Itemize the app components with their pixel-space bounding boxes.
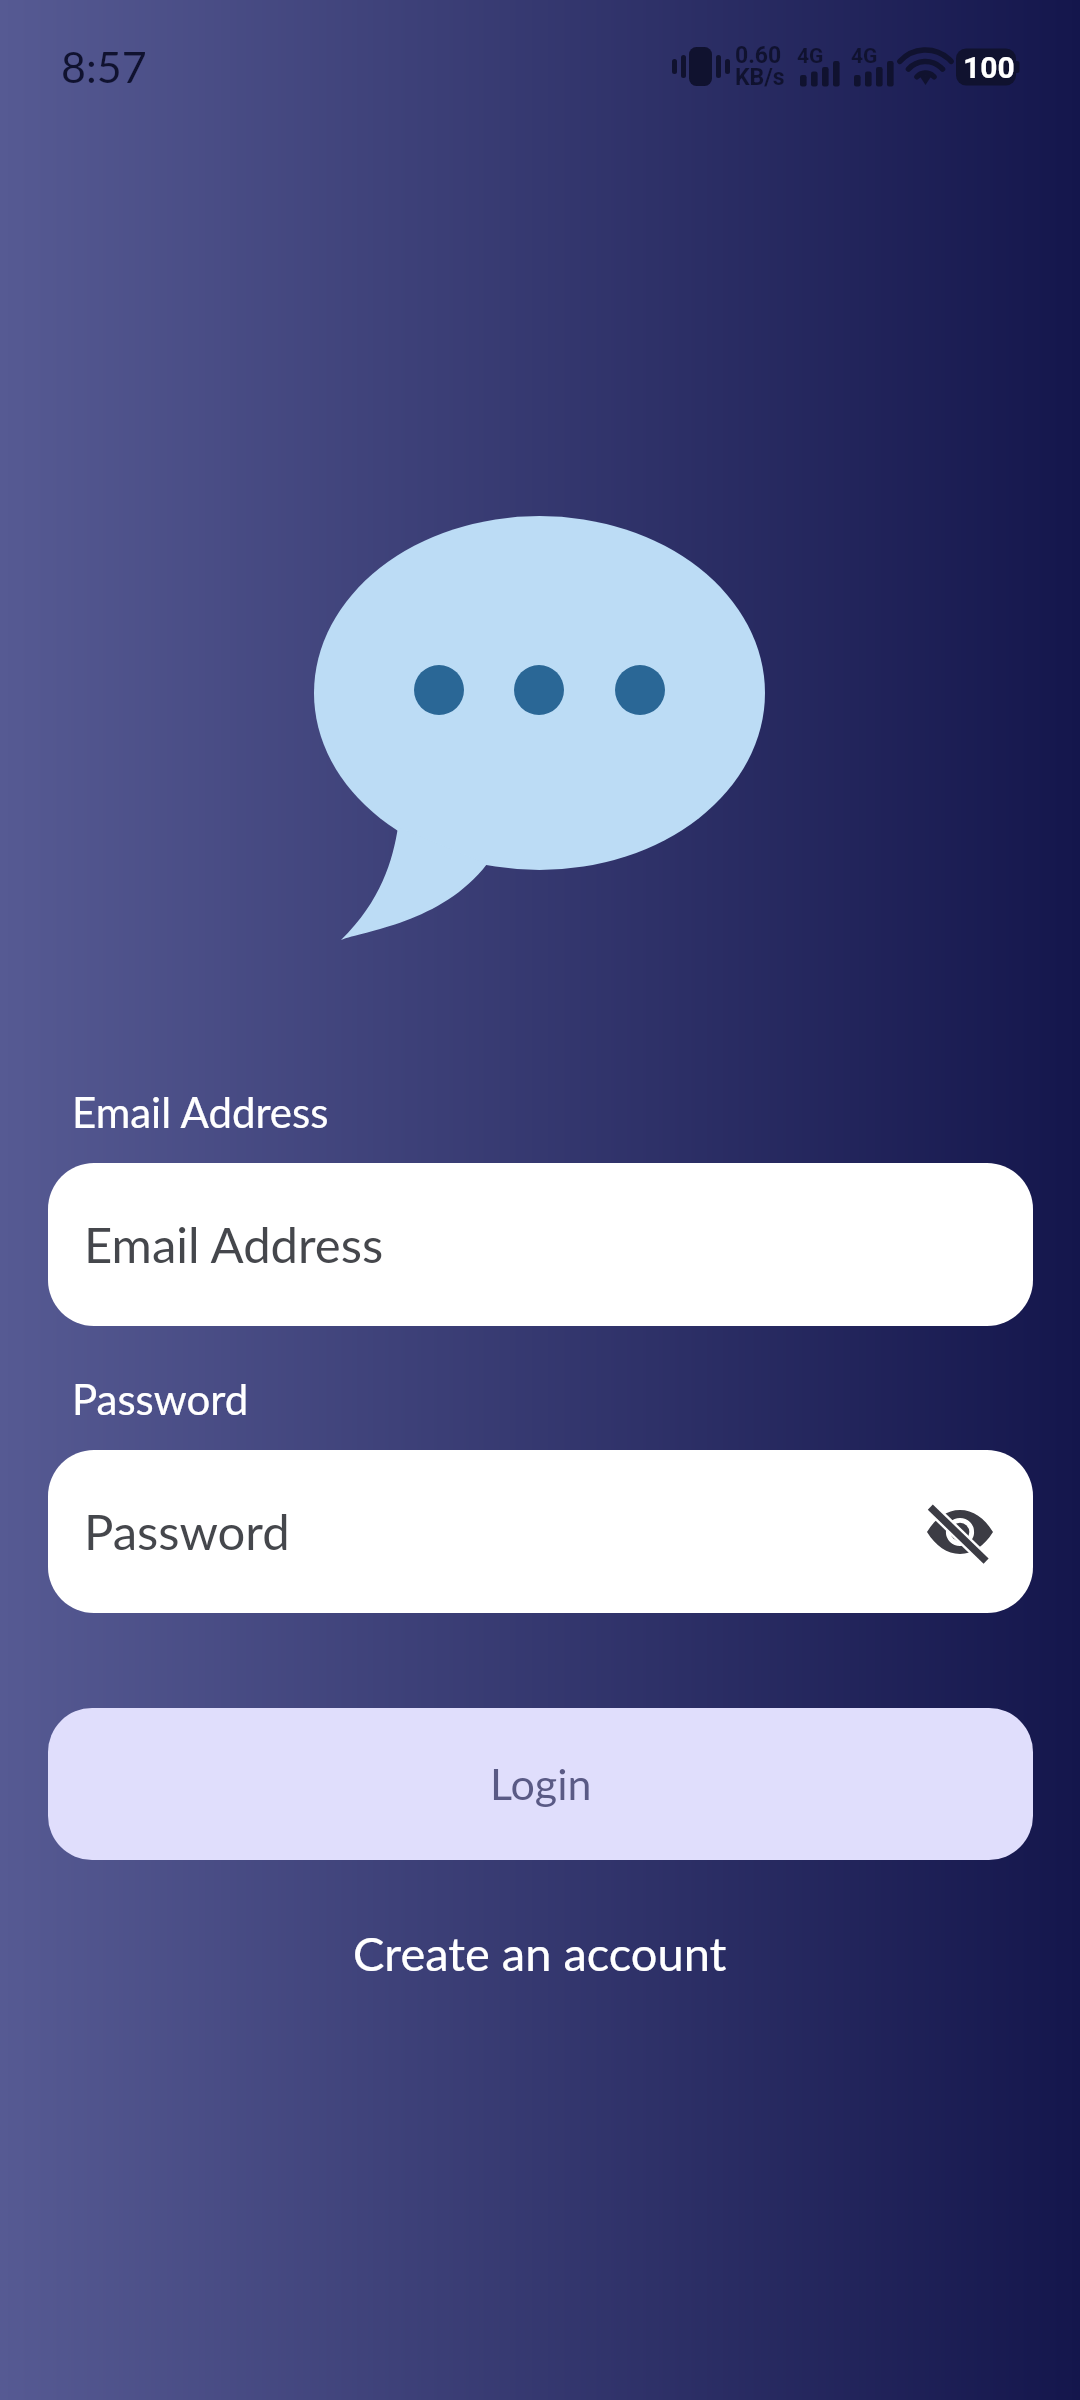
staticText: Email Address (84, 1215, 384, 1274)
staticText: 4G (797, 44, 824, 69)
button[interactable]: Password (48, 1450, 1033, 1613)
staticText: 0.60 (735, 42, 782, 69)
button[interactable]: Email Address (48, 1163, 1033, 1326)
staticText: 8:57 (61, 41, 147, 93)
button[interactable]: Show password (914, 1486, 1006, 1578)
button[interactable]: Create an account (270, 1915, 810, 1991)
staticText: Create an account (353, 1925, 727, 1981)
staticText: Login (490, 1758, 592, 1810)
staticText: Password (72, 1374, 249, 1424)
staticText: 100 (963, 50, 1015, 85)
staticText: 4G (851, 44, 878, 69)
staticText: Email Address (72, 1087, 329, 1137)
staticText: KB/s (735, 64, 785, 91)
button[interactable]: Login (48, 1708, 1033, 1860)
staticText: Password (84, 1502, 290, 1561)
